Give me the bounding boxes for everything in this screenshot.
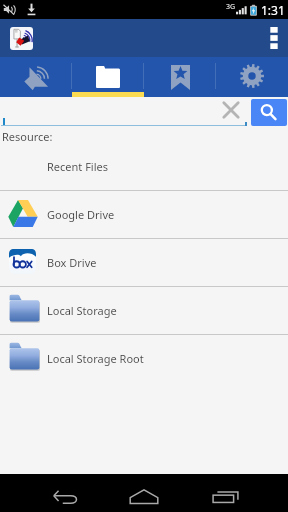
button[interactable] (1, 98, 247, 126)
button[interactable]: Files (72, 57, 144, 97)
button[interactable]: Local Storage Root (0, 335, 288, 382)
staticText: 1:31 (261, 2, 285, 18)
staticText: Resource: (2, 129, 53, 143)
button[interactable]: Back (37, 474, 93, 512)
staticText: Google Drive (47, 207, 115, 222)
button[interactable]: Home (116, 474, 172, 512)
button[interactable]: Search (251, 99, 287, 126)
staticText: Recent Files (47, 159, 109, 174)
button[interactable]: App logo (10, 27, 33, 50)
button[interactable]: Box Drive (0, 239, 288, 287)
staticText: Box Drive (47, 255, 97, 270)
staticText: 3G (226, 2, 236, 12)
button[interactable]: Bookmarks (144, 57, 216, 97)
staticText: Local Storage (47, 303, 117, 318)
button[interactable]: Announcements (0, 57, 72, 97)
button[interactable]: More options (260, 19, 288, 57)
button[interactable]: Google Drive (0, 191, 288, 239)
button[interactable]: Local Storage (0, 287, 288, 335)
button[interactable]: Recent Files (0, 143, 288, 191)
button[interactable]: Settings (216, 57, 288, 97)
button[interactable]: Recent apps (197, 474, 253, 512)
button[interactable]: Clear (214, 94, 248, 126)
staticText: Local Storage Root (47, 351, 144, 366)
